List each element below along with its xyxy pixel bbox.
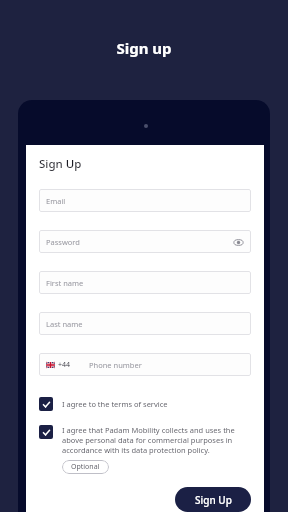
staticText: Password [46, 237, 80, 247]
staticText: +44 [58, 360, 71, 370]
button[interactable]: Checked [39, 397, 53, 411]
button[interactable]: First name [39, 271, 251, 294]
staticText: Sign up [0, 38, 288, 58]
staticText: I agree to the terms of service [62, 399, 168, 409]
staticText: I agree that Padam Mobility collects and… [62, 425, 251, 455]
staticText: Optional [71, 462, 100, 472]
button[interactable]: Show password [232, 236, 244, 248]
staticText: Last name [46, 319, 83, 329]
button[interactable]: +44 [39, 353, 251, 376]
staticText: Sign Up [195, 493, 232, 507]
staticText: Phone number [89, 360, 142, 370]
button[interactable]: Optional [62, 460, 109, 474]
button[interactable]: Sign Up [175, 487, 251, 512]
button[interactable]: Checked [39, 397, 251, 411]
button[interactable]: Password [39, 230, 251, 253]
button[interactable]: Email [39, 189, 251, 212]
button[interactable]: Checked [39, 425, 53, 439]
button[interactable]: Checked [39, 425, 251, 474]
button[interactable]: Last name [39, 312, 251, 335]
staticText: Sign Up [39, 156, 82, 172]
staticText: First name [46, 278, 84, 288]
staticText: Email [46, 196, 66, 206]
